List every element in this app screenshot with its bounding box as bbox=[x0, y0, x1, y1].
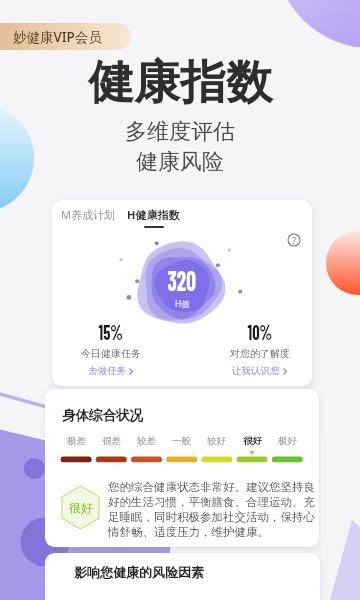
staticText: 很好 bbox=[243, 435, 262, 447]
staticText: 较好 bbox=[207, 435, 226, 447]
button[interactable]: 很差 bbox=[96, 433, 127, 449]
button[interactable]: H健康指数 bbox=[127, 205, 180, 228]
button[interactable]: 很好 bbox=[237, 433, 268, 449]
staticText: 影响您健康的风险因素 bbox=[74, 564, 204, 580]
staticText: 15% bbox=[98, 319, 123, 344]
staticText: ? bbox=[292, 234, 296, 246]
staticText: 320 bbox=[168, 263, 196, 297]
button[interactable]: 妙健康VIP会员 bbox=[0, 23, 131, 50]
button[interactable]: 较好 bbox=[201, 433, 232, 449]
button[interactable]: 一般 bbox=[166, 433, 197, 449]
staticText: H健康指数 bbox=[127, 207, 180, 222]
staticText: 10% bbox=[247, 319, 272, 344]
button[interactable]: 较差 bbox=[131, 433, 162, 449]
staticText: 很差 bbox=[102, 435, 121, 447]
button[interactable]: 让我认识您 bbox=[232, 365, 287, 377]
staticText: H值 bbox=[175, 298, 190, 310]
staticText: 您的综合健康状态非常好。建议您坚持良好的生活习惯，平衡膳食、合理运动、充足睡眠，… bbox=[108, 480, 316, 540]
staticText: 身体综合状况 bbox=[62, 407, 143, 424]
staticText: 对您的了解度 bbox=[230, 347, 290, 360]
staticText: 很好 bbox=[69, 500, 93, 515]
button[interactable]: 极差 bbox=[61, 433, 92, 449]
staticText: 较差 bbox=[137, 435, 156, 447]
staticText: 妙健康VIP会员 bbox=[13, 28, 102, 46]
staticText: 多维度评估 健康风险 bbox=[125, 118, 235, 175]
staticText: 今日健康任务 bbox=[81, 347, 141, 360]
staticText: 极差 bbox=[67, 435, 86, 447]
staticText: 健康指数 bbox=[88, 54, 272, 112]
button[interactable]: 极好 bbox=[272, 433, 303, 449]
button[interactable]: M养成计划 bbox=[61, 205, 115, 224]
staticText: 去做任务 bbox=[88, 365, 126, 377]
button[interactable]: Help bbox=[287, 233, 301, 247]
staticText: 极好 bbox=[278, 435, 297, 447]
staticText: 让我认识您 bbox=[232, 365, 280, 377]
button[interactable]: 去做任务 bbox=[88, 365, 133, 377]
staticText: 一般 bbox=[172, 435, 191, 447]
